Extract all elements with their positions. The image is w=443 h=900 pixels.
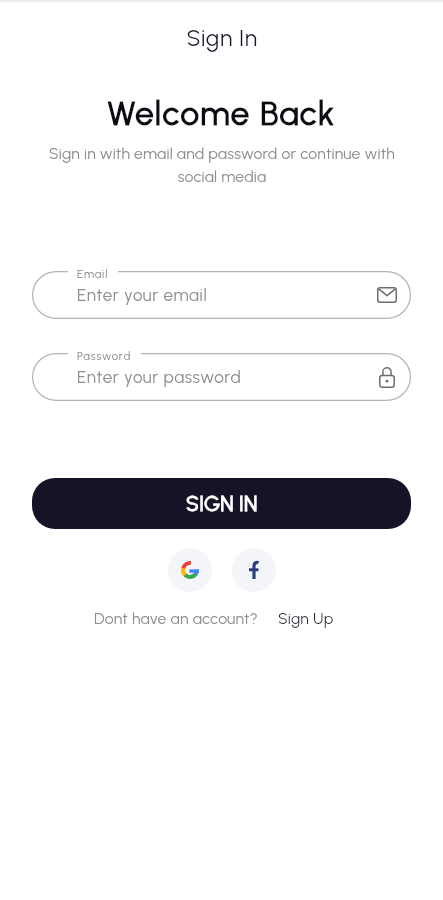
staticText: Sign in with email and password or conti… xyxy=(46,144,398,186)
button[interactable]: Email xyxy=(370,278,404,312)
staticText: Enter your password xyxy=(77,367,242,387)
button[interactable]: Sign Up xyxy=(278,609,334,628)
staticText: SIGN IN xyxy=(186,491,258,516)
button[interactable]: Password xyxy=(370,360,404,394)
button[interactable]: SIGN IN xyxy=(32,478,411,529)
staticText: Sign In xyxy=(186,24,258,52)
button[interactable]: Email xyxy=(32,271,411,319)
staticText: Welcome Back xyxy=(107,94,336,134)
button[interactable]: Sign in with Facebook xyxy=(232,548,276,592)
staticText: Email xyxy=(77,267,109,281)
staticText: Sign Up xyxy=(278,609,334,628)
staticText: Dont have an account? xyxy=(94,609,258,628)
button[interactable]: Sign in with Google xyxy=(168,548,212,592)
staticText: Password xyxy=(77,349,132,363)
staticText: Enter your email xyxy=(77,285,208,305)
button[interactable]: Password xyxy=(32,353,411,401)
